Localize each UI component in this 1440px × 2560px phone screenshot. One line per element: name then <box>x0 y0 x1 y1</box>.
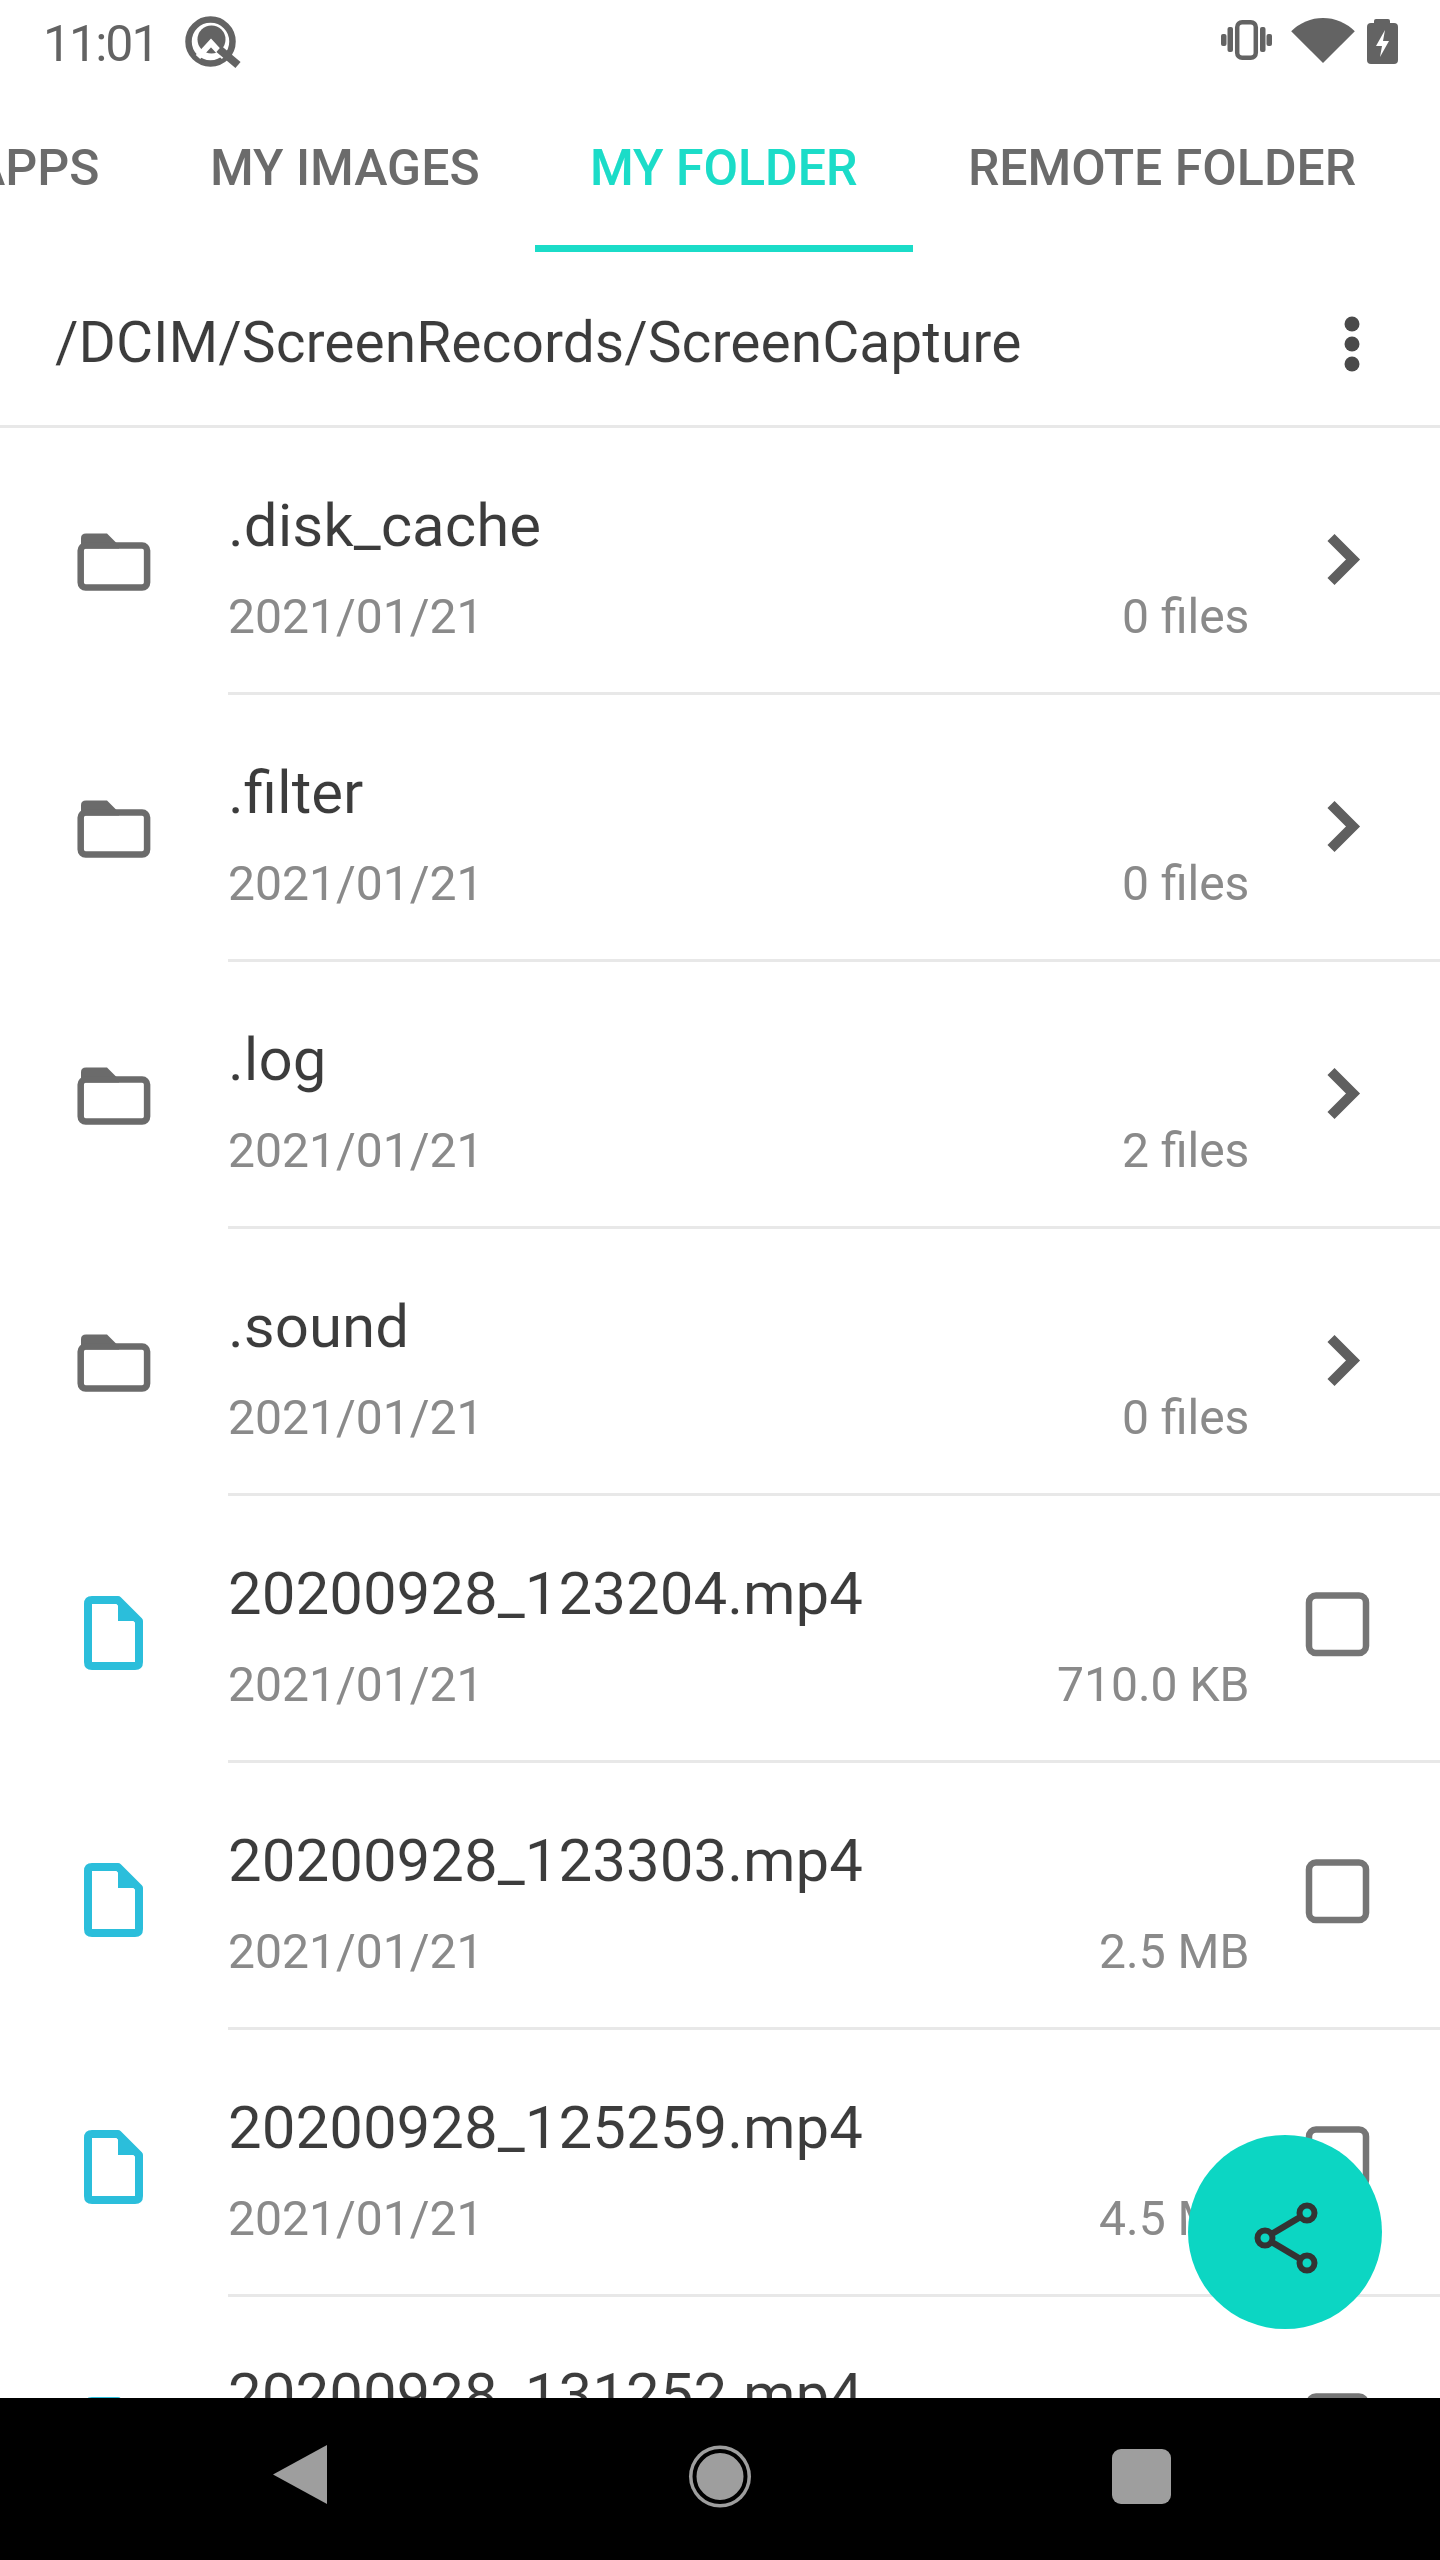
staticText: REMOTE FOLDER <box>968 139 1357 198</box>
staticText: 710.0 KB <box>1057 1656 1250 1712</box>
staticText: 2021/01/21 <box>228 1389 484 1445</box>
button[interactable] <box>1250 2297 1440 2560</box>
button[interactable] <box>0 2398 480 2560</box>
staticText: 2.5 MB <box>1099 2457 1250 2513</box>
button[interactable]: MY IMAGES <box>155 84 535 252</box>
staticText: 11:01 <box>43 15 158 74</box>
staticText: 20200928_131252.mp4 <box>228 2359 864 2429</box>
staticText: 2 files <box>1122 1122 1250 1178</box>
button[interactable] <box>480 2398 960 2560</box>
staticText: 2021/01/21 <box>228 588 484 644</box>
staticText: 20200928_123303.mp4 <box>228 1825 864 1895</box>
staticText: APPS <box>0 139 100 198</box>
staticText: 2021/01/21 <box>228 1122 484 1178</box>
staticText: 2.5 MB <box>1099 1923 1250 1979</box>
button[interactable]: 20200928_123204.mp4 <box>0 1496 1440 1760</box>
staticText: MY IMAGES <box>210 139 480 198</box>
button[interactable] <box>1250 1496 1440 1760</box>
button[interactable] <box>1250 962 1440 1226</box>
staticText: .sound <box>228 1291 410 1361</box>
staticText: 2021/01/21 <box>228 1656 484 1712</box>
staticText: 2021/01/21 <box>228 2190 484 2246</box>
button[interactable] <box>1250 2030 1440 2294</box>
button[interactable] <box>1250 1229 1440 1493</box>
button[interactable]: 20200928_131252.mp4 <box>0 2297 1440 2560</box>
staticText: MY FOLDER <box>590 139 858 198</box>
staticText: 20200928_125259.mp4 <box>228 2092 864 2162</box>
staticText: 0 files <box>1122 588 1250 644</box>
staticText: 20200928_123204.mp4 <box>228 1558 864 1628</box>
button[interactable] <box>1310 252 1440 425</box>
staticText: 2021/01/21 <box>228 855 484 911</box>
button[interactable]: 20200928_125259.mp4 <box>0 2030 1440 2294</box>
staticText: 0 files <box>1122 855 1250 911</box>
button[interactable]: APPS <box>0 84 155 252</box>
button[interactable] <box>1188 2135 1382 2329</box>
button[interactable]: .filter <box>0 695 1440 959</box>
staticText: 0 files <box>1122 1389 1250 1445</box>
button[interactable]: 20200928_123303.mp4 <box>0 1763 1440 2027</box>
staticText: /DCIM/ScreenRecords/ScreenCapture <box>55 309 1022 376</box>
button[interactable] <box>1250 695 1440 959</box>
button[interactable]: .sound <box>0 1229 1440 1493</box>
button[interactable] <box>1250 428 1440 692</box>
staticText: 2021/01/21 <box>228 1923 484 1979</box>
staticText: 4.5 MB <box>1099 2190 1250 2246</box>
staticText: .log <box>228 1024 327 1094</box>
staticText: .filter <box>228 757 364 827</box>
button[interactable]: MY FOLDER <box>535 84 913 252</box>
button[interactable]: REMOTE FOLDER <box>913 84 1412 252</box>
button[interactable]: .disk_cache <box>0 428 1440 692</box>
staticText: 2021/01/21 <box>228 2457 484 2513</box>
button[interactable] <box>960 2398 1440 2560</box>
button[interactable] <box>1250 1763 1440 2027</box>
button[interactable]: .log <box>0 962 1440 1226</box>
staticText: .disk_cache <box>228 490 542 560</box>
